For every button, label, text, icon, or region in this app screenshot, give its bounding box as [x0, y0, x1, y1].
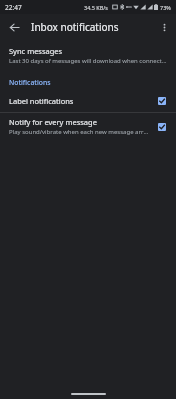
button[interactable]: Back	[5, 18, 23, 36]
staticText: 34.5 KB/s	[84, 4, 109, 11]
button[interactable]: Notify for every message	[0, 113, 176, 140]
staticText: Notifications	[9, 78, 51, 87]
button[interactable]: Label notifications	[0, 90, 176, 112]
button[interactable]: More options	[155, 18, 173, 36]
staticText: 22:47	[5, 3, 22, 12]
staticText: Inbox notifications	[31, 20, 119, 34]
staticText: Sync messages	[9, 46, 63, 56]
button[interactable]: Checked	[155, 94, 169, 108]
button[interactable]: Checked	[155, 120, 169, 134]
staticText: Notify for every message	[9, 117, 97, 127]
staticText: Label notifications	[9, 96, 74, 106]
staticText: Last 30 days of messages will download w…	[9, 57, 167, 65]
staticText: 73%	[160, 4, 171, 11]
button[interactable]: Sync messages	[0, 44, 176, 67]
staticText: Play sound/vibrate when each new message…	[9, 128, 149, 136]
